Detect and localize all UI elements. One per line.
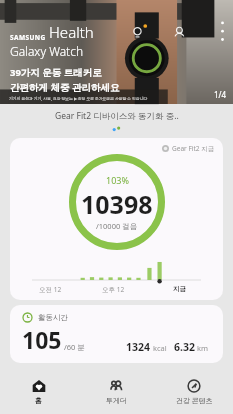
- staticText: 활동시간: [38, 313, 68, 322]
- staticText: 103%: [106, 174, 129, 186]
- button[interactable]: 홈: [0, 370, 77, 414]
- button[interactable]: Gear Fit2 지금: [10, 138, 223, 300]
- staticText: 오후 12: [102, 285, 125, 294]
- staticText: 1/4: [214, 89, 227, 100]
- staticText: 39가지 운동 트래커로: [10, 66, 102, 79]
- staticText: 기기의 옵션과 기기, 사용, 건강 정보는 ▶ 측정 오류 추가요금은 사용할…: [9, 96, 148, 101]
- button[interactable]: 활동시간: [10, 305, 223, 363]
- staticText: Health: [49, 22, 94, 42]
- button[interactable]: 건강 콘텐츠: [155, 370, 233, 414]
- staticText: km: [197, 343, 209, 353]
- staticText: 투게더: [106, 396, 127, 405]
- button[interactable]: 투게더: [77, 370, 155, 414]
- staticText: 10398: [81, 187, 153, 221]
- staticText: 건강 콘텐츠: [176, 396, 213, 406]
- staticText: Gear Fit2 디바이스와 동기화 중..: [55, 110, 179, 122]
- button[interactable]: SAMSUNG: [0, 0, 233, 104]
- staticText: 6.32: [174, 340, 195, 354]
- staticText: /60 분: [64, 342, 85, 352]
- staticText: 1324: [126, 340, 151, 354]
- staticText: Galaxy Watch: [10, 43, 84, 59]
- staticText: SAMSUNG: [10, 33, 46, 42]
- staticText: 간편하게 체중 관리하세요: [10, 81, 120, 94]
- staticText: kcal: [153, 343, 167, 353]
- staticText: 오전 12: [39, 285, 62, 294]
- staticText: 홈: [35, 396, 42, 405]
- staticText: /10000 걸음: [96, 221, 138, 231]
- staticText: 지금: [173, 285, 186, 293]
- staticText: 105: [22, 324, 62, 355]
- staticText: Gear Fit2 지금: [172, 144, 215, 153]
